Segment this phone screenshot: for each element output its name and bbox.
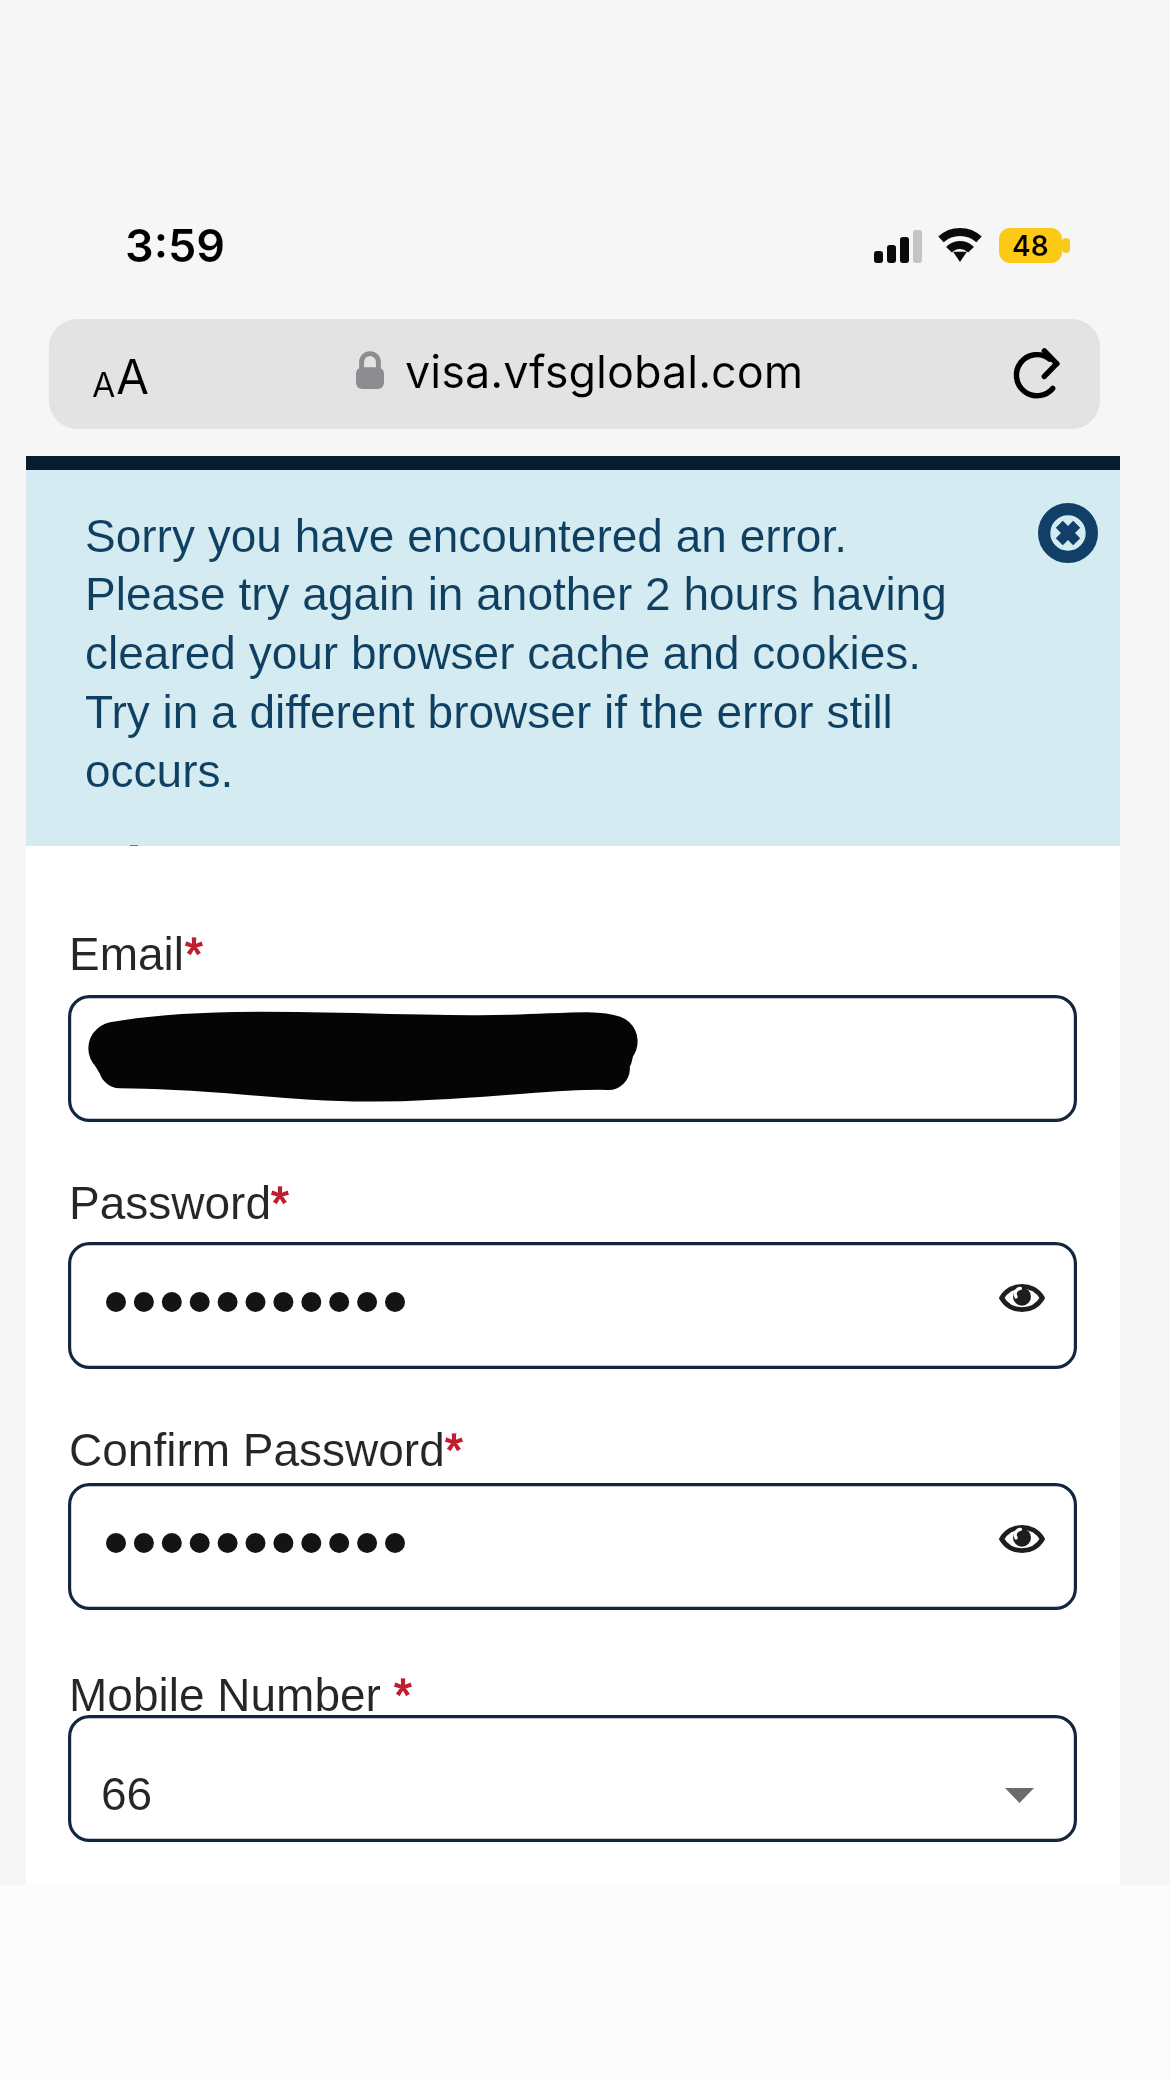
button[interactable]	[68, 995, 1077, 1122]
button[interactable]: A	[49, 319, 1100, 429]
staticText: Password	[69, 1177, 271, 1228]
staticText: Email	[69, 928, 185, 979]
staticText: Mobile Number	[69, 1669, 394, 1720]
staticText: A	[116, 347, 150, 405]
button[interactable]: 66	[68, 1715, 1077, 1842]
staticText: 48	[1012, 229, 1049, 263]
staticText: *	[445, 1424, 463, 1475]
staticText: *	[394, 1669, 412, 1720]
button[interactable]: Close	[1033, 498, 1103, 568]
staticText: *	[271, 1177, 289, 1228]
button[interactable]: Select country code	[989, 1765, 1049, 1825]
staticText: 66	[101, 1768, 153, 1819]
button[interactable]: Show password	[982, 1258, 1062, 1338]
staticText: Sorry you have encountered an error. Ple…	[85, 510, 985, 797]
button[interactable]: Show confirm password	[68, 1483, 1077, 1610]
staticText: visa.vfsglobal.com	[405, 344, 804, 398]
button[interactable]: Reload	[1000, 332, 1076, 408]
staticText: A	[92, 364, 116, 405]
staticText: *	[185, 928, 203, 979]
staticText: Confirm Password	[69, 1424, 445, 1475]
staticText: 3:59	[125, 218, 226, 272]
button[interactable]: Show confirm password	[982, 1499, 1062, 1579]
button[interactable]: Show password	[68, 1242, 1077, 1369]
